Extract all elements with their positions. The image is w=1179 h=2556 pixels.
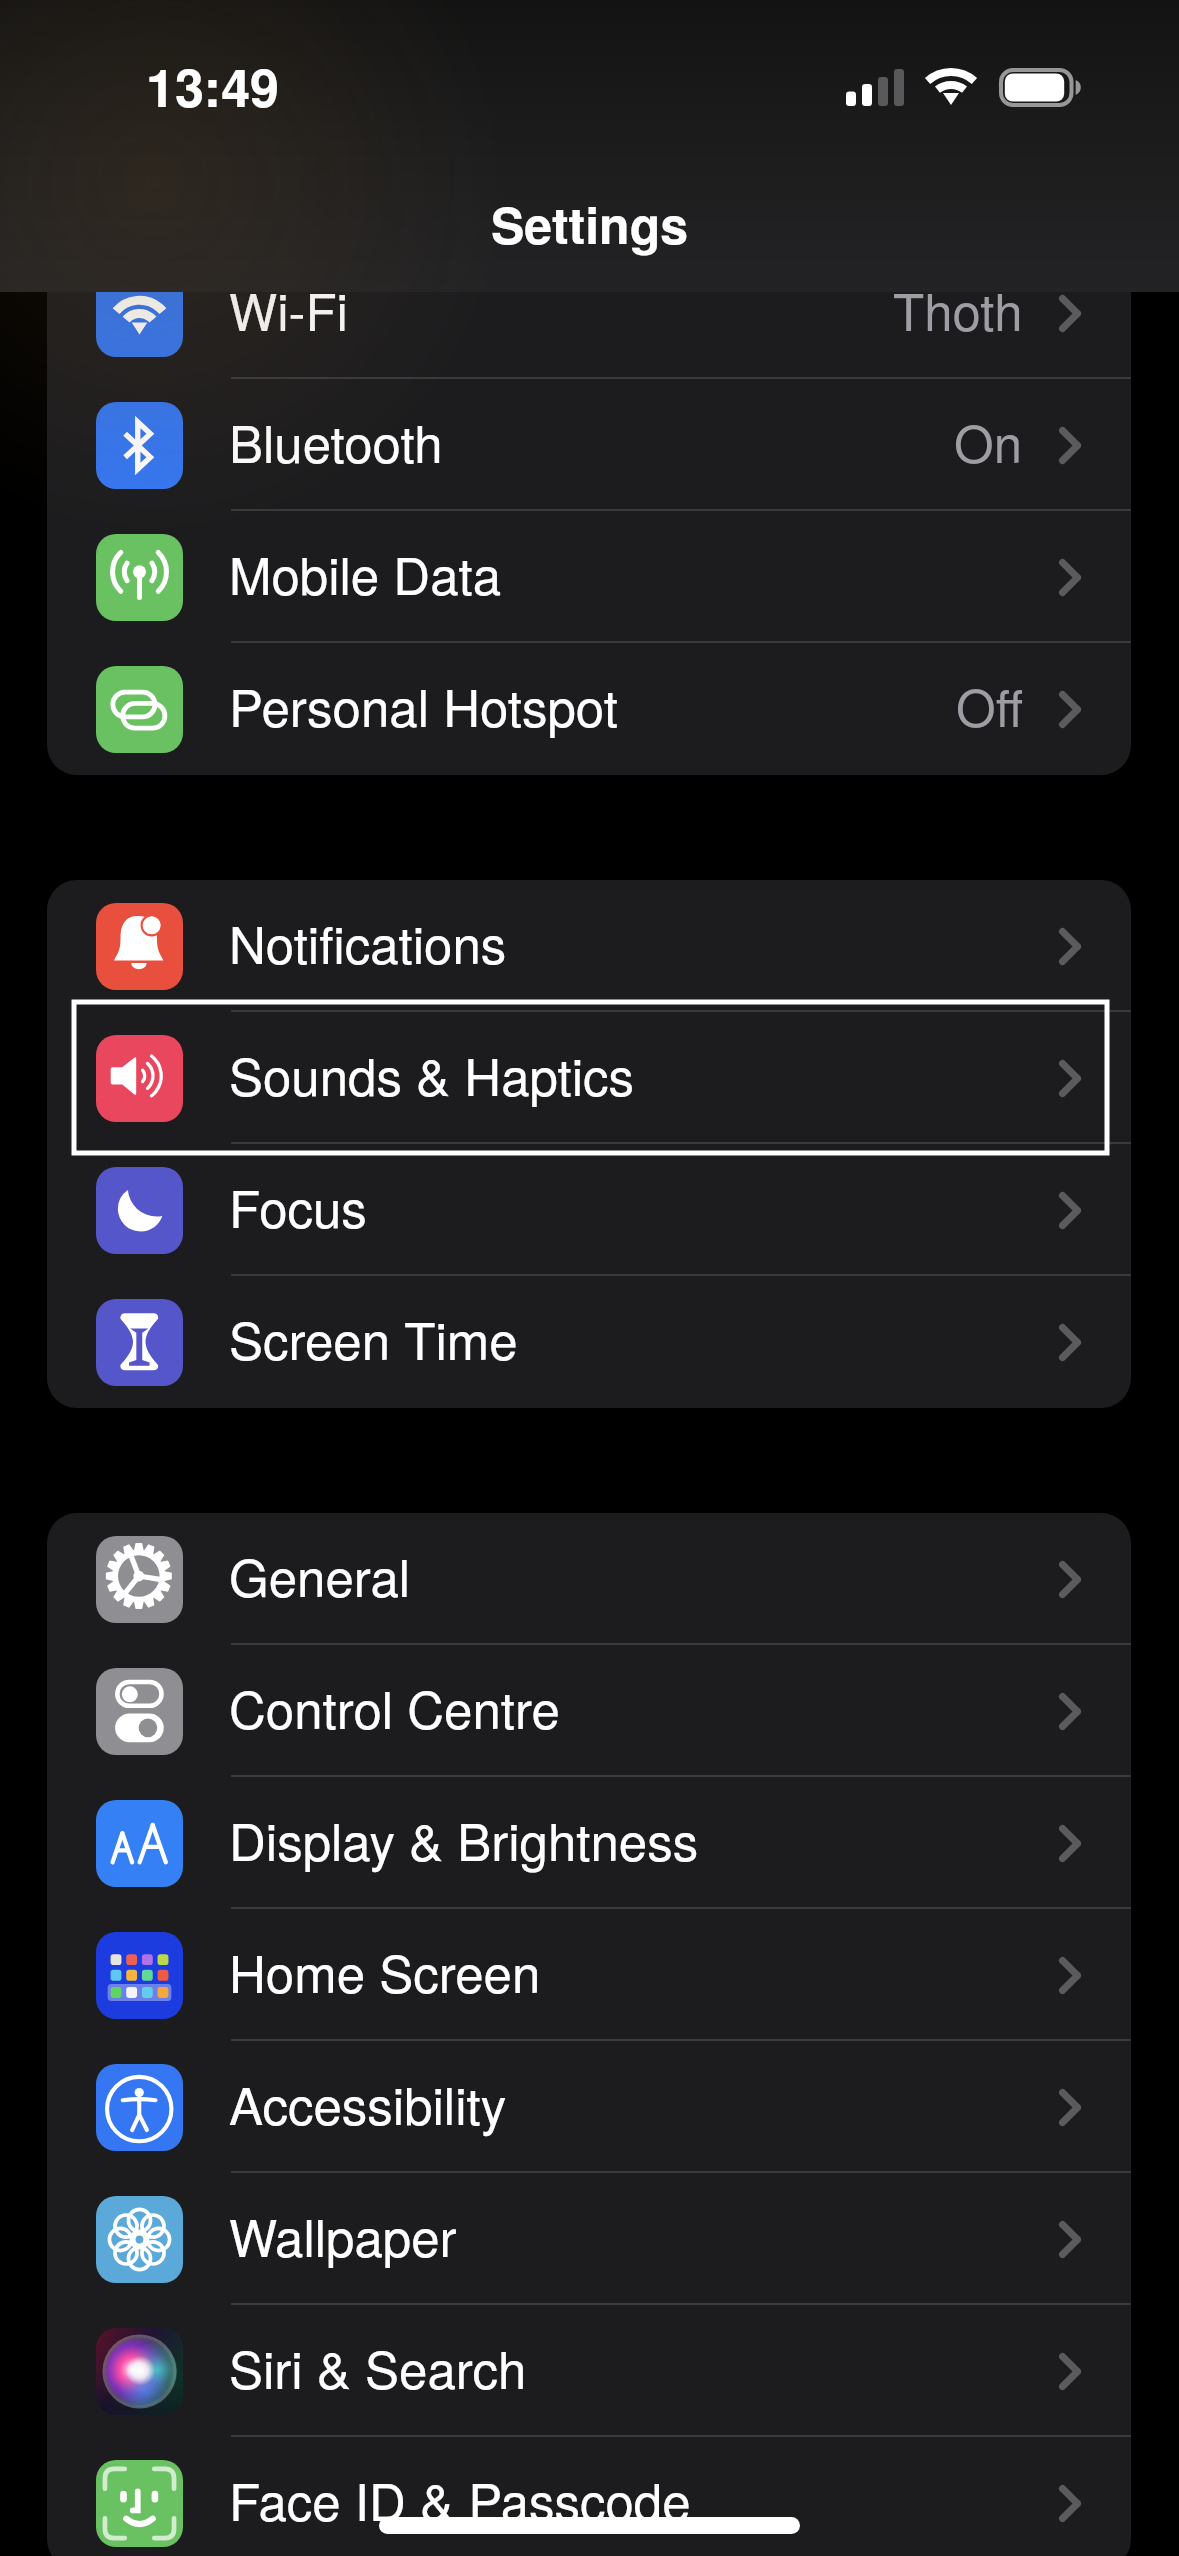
staticText: Accessibility xyxy=(229,2066,507,2139)
button[interactable]: Display & Brightness xyxy=(47,1777,1131,1909)
button[interactable]: Face ID & Passcode xyxy=(47,2437,1131,2556)
staticText: Notifications xyxy=(229,905,507,978)
button[interactable]: Control Centre xyxy=(47,1645,1131,1777)
staticText: Focus xyxy=(229,1169,367,1242)
button[interactable]: Home Screen xyxy=(47,1909,1131,2041)
button[interactable]: Siri & Search xyxy=(47,2305,1131,2437)
staticText: General xyxy=(229,1538,411,1611)
staticText: Siri & Search xyxy=(229,2330,527,2403)
staticText: Personal Hotspot xyxy=(229,668,618,741)
button[interactable]: Bluetooth xyxy=(47,379,1131,511)
staticText: Bluetooth xyxy=(229,404,443,477)
staticText: Settings xyxy=(491,188,688,260)
button[interactable]: Mobile Data xyxy=(47,511,1131,643)
other: Sounds & Haptics focused xyxy=(74,1002,1107,1153)
button[interactable]: Screen Time xyxy=(47,1276,1131,1408)
staticText: 13:49 xyxy=(146,48,279,122)
button[interactable]: Focus xyxy=(47,1144,1131,1276)
button[interactable]: General xyxy=(47,1513,1131,1645)
staticText: Mobile Data xyxy=(229,536,502,609)
staticText: Wi-Fi xyxy=(229,272,348,345)
staticText: Sounds & Haptics xyxy=(229,1037,635,1110)
staticText: Face ID & Passcode xyxy=(229,2462,691,2535)
staticText: Wallpaper xyxy=(229,2198,457,2271)
staticText: Off xyxy=(956,668,1023,741)
staticText: Home Screen xyxy=(229,1934,541,2007)
button[interactable]: Wi-Fi xyxy=(47,247,1131,379)
button[interactable]: Personal Hotspot xyxy=(47,643,1131,775)
staticText: On xyxy=(954,404,1023,477)
staticText: Screen Time xyxy=(229,1301,518,1374)
button[interactable]: Notifications xyxy=(47,880,1131,1012)
button[interactable]: Accessibility xyxy=(47,2041,1131,2173)
button[interactable]: Wallpaper xyxy=(47,2173,1131,2305)
staticText: Control Centre xyxy=(229,1670,560,1743)
staticText: Display & Brightness xyxy=(229,1802,699,1875)
button[interactable]: Sounds & Haptics xyxy=(47,1012,1131,1144)
staticText: Thoth xyxy=(893,272,1023,345)
